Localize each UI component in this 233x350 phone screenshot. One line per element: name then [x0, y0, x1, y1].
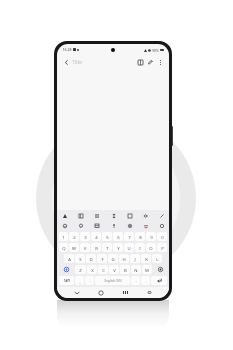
button[interactable]: Keyboard settings: [145, 288, 154, 297]
button[interactable]: Format 1: [76, 211, 85, 220]
button[interactable]: Backspace: [153, 265, 167, 274]
staticText: S: [79, 256, 82, 262]
staticText: .: [145, 278, 147, 284]
button[interactable]: Tool 4: [125, 221, 134, 230]
button[interactable]: Space: [95, 276, 130, 285]
staticText: 7: [128, 234, 131, 240]
staticText: L: [156, 256, 159, 262]
button[interactable]: Home: [96, 288, 105, 297]
staticText: R: [95, 245, 98, 251]
button[interactable]: ·: [131, 276, 140, 285]
button[interactable]: N: [131, 265, 141, 274]
staticText: !#1: [64, 278, 70, 283]
button[interactable]: I: [135, 243, 145, 252]
button[interactable]: Z: [75, 265, 86, 274]
button[interactable]: 0: [157, 232, 167, 241]
button[interactable]: C: [98, 265, 108, 274]
staticText: 4: [95, 234, 98, 240]
button[interactable]: More options: [155, 57, 165, 67]
button[interactable]: Y: [113, 243, 123, 252]
button[interactable]: Tool 3: [109, 221, 118, 230]
button[interactable]: S: [75, 254, 85, 263]
button[interactable]: 4: [91, 232, 101, 241]
button[interactable]: ,: [75, 276, 84, 285]
button[interactable]: M: [142, 265, 152, 274]
button[interactable]: X: [87, 265, 97, 274]
button[interactable]: Format 3: [109, 211, 118, 220]
staticText: K: [145, 256, 148, 262]
button[interactable]: A: [64, 254, 74, 263]
staticText: 0: [161, 234, 164, 240]
button[interactable]: .: [141, 276, 150, 285]
button[interactable]: D: [86, 254, 96, 263]
staticText: I: [139, 245, 141, 251]
staticText: ,: [79, 278, 81, 284]
button[interactable]: Tool 1: [76, 221, 85, 230]
button[interactable]: Symbols: [59, 276, 74, 285]
button[interactable]: R: [91, 243, 101, 252]
button[interactable]: J: [130, 254, 140, 263]
staticText: 1: [62, 234, 65, 240]
button[interactable]: Format 6: [157, 211, 166, 220]
button[interactable]: 3: [80, 232, 90, 241]
staticText: ·: [89, 278, 91, 284]
button[interactable]: G: [108, 254, 118, 263]
button[interactable]: Recent apps: [121, 288, 130, 297]
staticText: D: [89, 256, 93, 262]
staticText: J: [134, 256, 136, 262]
button[interactable]: Tool 2: [92, 221, 101, 230]
staticText: H: [122, 256, 126, 262]
button[interactable]: ·: [85, 276, 94, 285]
button[interactable]: 9: [146, 232, 156, 241]
staticText: 5: [106, 234, 109, 240]
button[interactable]: Attach: [145, 57, 155, 67]
button[interactable]: Enter: [151, 276, 167, 285]
button[interactable]: Q: [59, 243, 68, 252]
button[interactable]: O: [146, 243, 156, 252]
button[interactable]: 6: [113, 232, 123, 241]
button[interactable]: P: [157, 243, 167, 252]
button[interactable]: Format 2: [92, 211, 101, 220]
staticText: 8: [139, 234, 142, 240]
button[interactable]: Tool 6: [157, 221, 166, 230]
staticText: Z: [79, 267, 82, 273]
button[interactable]: 1: [59, 232, 68, 241]
button[interactable]: W: [69, 243, 79, 252]
button[interactable]: Shift: [59, 265, 74, 274]
button[interactable]: L: [152, 254, 162, 263]
button[interactable]: B: [120, 265, 130, 274]
button[interactable]: Format 4: [125, 211, 134, 220]
button[interactable]: T: [102, 243, 112, 252]
button[interactable]: Format 0: [60, 211, 69, 220]
button[interactable]: F: [97, 254, 107, 263]
staticText: Title: [72, 59, 82, 66]
staticText: B: [124, 267, 127, 273]
button[interactable]: K: [141, 254, 151, 263]
staticText: O: [149, 245, 153, 251]
button[interactable]: 8: [135, 232, 145, 241]
staticText: T: [106, 245, 109, 251]
staticText: G: [111, 256, 115, 262]
button[interactable]: Hide keyboard: [72, 288, 81, 297]
button[interactable]: 5: [102, 232, 112, 241]
button[interactable]: Back: [61, 57, 71, 67]
button[interactable]: Format 5: [141, 211, 150, 220]
staticText: 2: [73, 234, 76, 240]
staticText: Y: [117, 245, 120, 251]
button[interactable]: V: [109, 265, 119, 274]
button[interactable]: Tool 0: [60, 221, 69, 230]
staticText: X: [91, 267, 94, 273]
staticText: 3: [84, 234, 87, 240]
button[interactable]: Tool 5: [141, 221, 150, 230]
button[interactable]: Bookmarks: [135, 57, 145, 67]
staticText: F: [101, 256, 104, 262]
staticText: C: [102, 267, 105, 273]
button[interactable]: E: [80, 243, 90, 252]
button[interactable]: U: [124, 243, 134, 252]
button[interactable]: 7: [124, 232, 134, 241]
staticText: N: [134, 267, 138, 273]
button[interactable]: H: [119, 254, 129, 263]
button[interactable]: 2: [69, 232, 79, 241]
staticText: A: [68, 256, 71, 262]
staticText: E: [84, 245, 87, 251]
